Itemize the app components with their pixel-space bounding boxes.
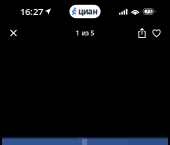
button[interactable]: Add to favourites [148,23,164,43]
button[interactable]: Close [0,23,27,43]
staticText: 73 [145,8,151,15]
button[interactable]: Share [135,23,148,43]
staticText: циан [78,6,97,17]
staticText: 1 из 5 [75,29,94,37]
staticText: 16:27 [20,5,43,18]
